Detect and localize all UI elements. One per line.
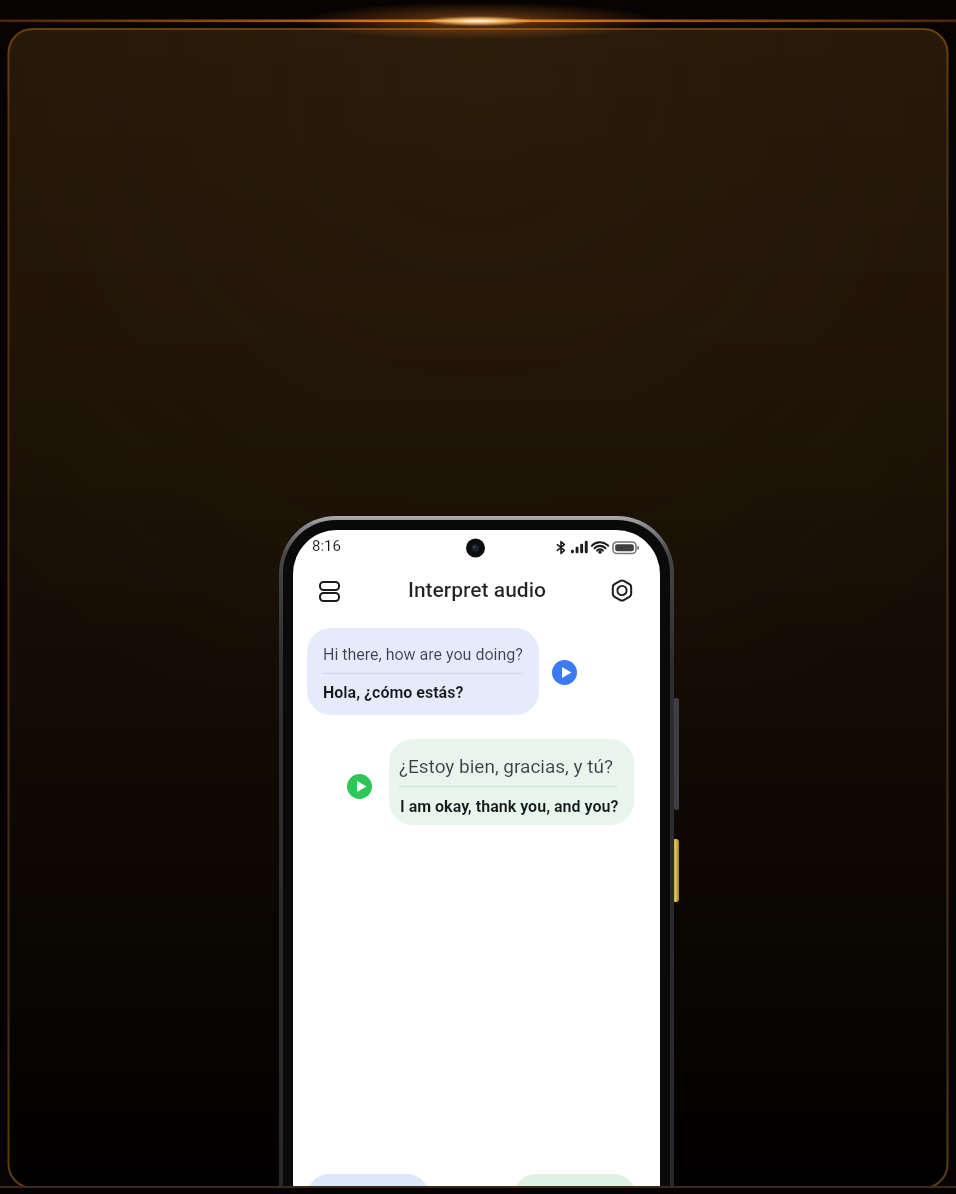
button[interactable]: [514, 1174, 636, 1194]
button[interactable]: [389, 739, 634, 825]
button[interactable]: [307, 1174, 429, 1194]
staticText: I am okay, thank you, and you?: [400, 797, 619, 816]
staticText: ¿Estoy bien, gracias, y tú?: [399, 755, 613, 777]
button[interactable]: [602, 570, 642, 610]
button[interactable]: [307, 628, 539, 715]
staticText: Hi there, how are you doing?: [323, 645, 523, 664]
staticText: Interpret audio: [408, 578, 546, 603]
button[interactable]: [347, 774, 372, 799]
staticText: Hola, ¿cómo estás?: [323, 683, 464, 702]
button[interactable]: [552, 660, 577, 685]
button[interactable]: [309, 571, 349, 611]
staticText: 8:16: [312, 537, 341, 555]
